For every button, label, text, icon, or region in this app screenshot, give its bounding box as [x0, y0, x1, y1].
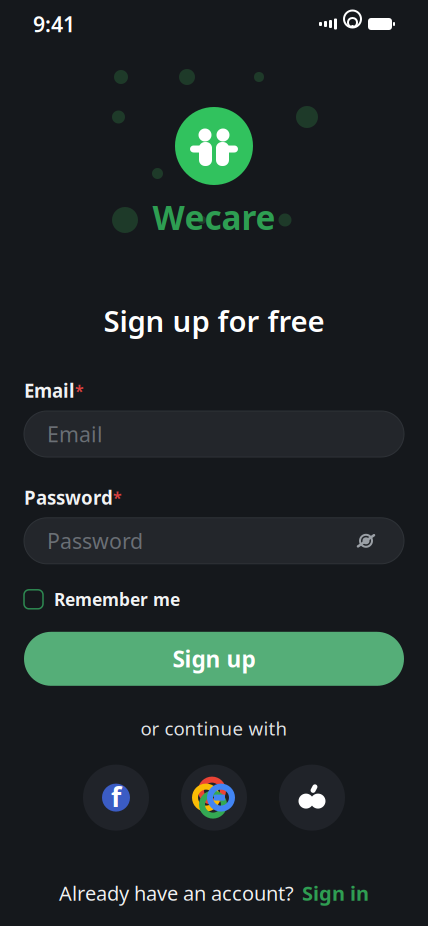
staticText: *	[75, 380, 84, 401]
staticText: Password	[47, 527, 143, 555]
staticText: Sign in	[302, 880, 369, 906]
staticText: or continue with	[140, 716, 287, 741]
button[interactable]: Sign up	[24, 632, 404, 686]
staticText: Password	[24, 485, 113, 510]
staticText: Email	[24, 378, 75, 403]
staticText: f	[111, 779, 121, 814]
staticText: Already have an account?	[59, 880, 294, 906]
button[interactable]: Continue with Apple	[279, 765, 345, 831]
staticText: Wecare	[152, 195, 275, 239]
staticText: *	[113, 487, 122, 508]
button[interactable]: Continue with Facebook	[83, 765, 149, 831]
staticText: Remember me	[54, 588, 180, 611]
staticText: Sign up for free	[103, 301, 324, 340]
staticText: Email	[47, 420, 103, 448]
staticText: 9:41	[33, 10, 75, 38]
button[interactable]: Continue with Google	[181, 765, 247, 831]
staticText: Sign up	[172, 644, 255, 674]
button[interactable]: Remember me	[24, 584, 180, 615]
button[interactable]: Already have an account?	[49, 874, 379, 912]
button[interactable]: Show password	[351, 526, 381, 556]
